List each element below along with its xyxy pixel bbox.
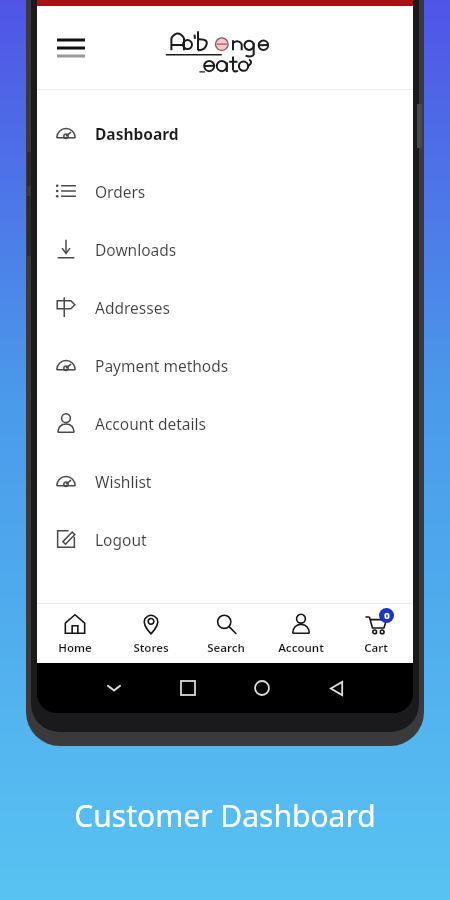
button[interactable]: Stores [113,604,188,663]
button[interactable]: 0 [338,604,413,663]
staticText: Logout [95,529,147,550]
button[interactable]: Payment methods [37,336,413,394]
button[interactable]: Wishlist [37,452,413,510]
button[interactable]: Open navigation menu [49,26,93,70]
button[interactable]: Back [319,671,353,705]
button[interactable]: As'Bonge eats home [163,20,303,76]
button[interactable]: Account [263,604,338,663]
staticText: Home [58,640,92,656]
button[interactable]: Orders [37,162,413,220]
button[interactable]: Dashboard [37,104,413,162]
staticText: Customer Dashboard [0,795,450,836]
staticText: Orders [95,181,146,202]
staticText: Search [207,640,245,656]
staticText: Downloads [95,239,177,260]
staticText: Cart [364,640,388,656]
staticText: Stores [133,640,169,656]
staticText: Payment methods [95,355,229,376]
button[interactable]: Account details [37,394,413,452]
staticText: Addresses [95,297,170,318]
staticText: Account details [95,413,206,434]
button[interactable]: Hide keyboard [97,671,131,705]
button[interactable]: Addresses [37,278,413,336]
staticText: Account [278,640,324,656]
button[interactable]: Home [245,671,279,705]
button[interactable]: Downloads [37,220,413,278]
staticText: Dashboard [95,123,179,144]
button[interactable]: Recent apps [171,671,205,705]
button[interactable]: Logout [37,510,413,568]
button[interactable]: Search [188,604,263,663]
staticText: Wishlist [95,471,152,492]
staticText: 0 [384,609,390,622]
button[interactable]: Home [37,604,113,663]
